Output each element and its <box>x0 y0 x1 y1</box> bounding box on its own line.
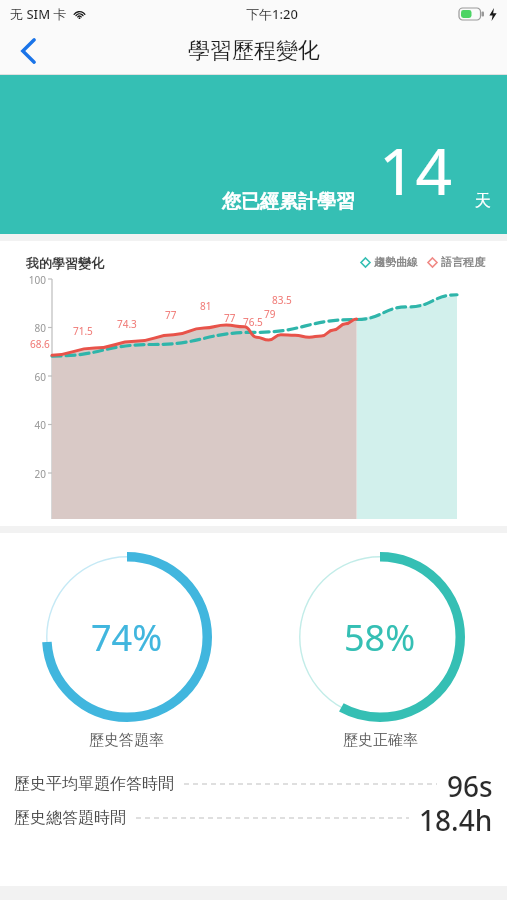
button[interactable]: 74% <box>0 533 253 761</box>
staticText: 80 <box>20 321 46 335</box>
staticText: 74% <box>91 613 163 662</box>
staticText: 无 SIM 卡 <box>10 5 67 23</box>
staticText: 14 <box>379 127 453 214</box>
staticText: 學習歷程變化 <box>188 37 320 65</box>
staticText: 79 <box>264 307 276 321</box>
staticText: 天 <box>475 191 491 211</box>
staticText: 語言程度 <box>441 255 485 269</box>
staticText: 58% <box>344 613 416 662</box>
staticText: 74.3 <box>117 317 137 331</box>
staticText: 81 <box>200 299 212 313</box>
staticText: 96s <box>447 767 493 801</box>
staticText: 83.5 <box>272 293 292 307</box>
button[interactable]: 歷史總答題時間 <box>14 801 493 835</box>
staticText: 40 <box>20 418 46 432</box>
staticText: 68.6 <box>30 337 50 351</box>
staticText: 77 <box>224 311 236 325</box>
staticText: 18.4h <box>419 801 493 835</box>
staticText: 歷史總答題時間 <box>14 808 126 828</box>
staticText: 下午1:20 <box>246 5 298 23</box>
button[interactable]: 58% <box>253 533 507 761</box>
staticText: 20 <box>20 467 46 481</box>
staticText: 76.5 <box>243 315 263 329</box>
staticText: 趨勢曲線 <box>374 255 418 269</box>
staticText: 我的學習變化 <box>26 255 104 271</box>
staticText: 77 <box>165 308 177 322</box>
staticText: 71.5 <box>73 324 93 338</box>
staticText: 歷史平均單題作答時間 <box>14 774 174 794</box>
staticText: 100 <box>20 273 46 287</box>
staticText: 歷史正確率 <box>343 731 418 750</box>
button[interactable]: 歷史平均單題作答時間 <box>14 767 493 801</box>
button[interactable]: Back <box>0 28 56 74</box>
staticText: 歷史答題率 <box>89 731 164 750</box>
staticText: 您已經累計學習 <box>222 190 355 214</box>
staticText: 60 <box>20 370 46 384</box>
